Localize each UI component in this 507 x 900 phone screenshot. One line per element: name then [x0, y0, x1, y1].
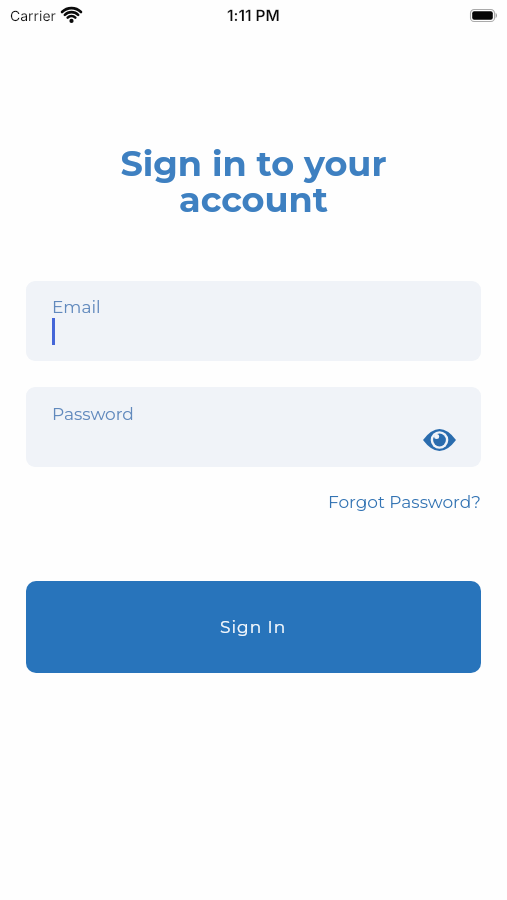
button[interactable]: Email	[26, 281, 481, 361]
button[interactable]: Password	[26, 387, 481, 467]
button[interactable]: Sign In	[26, 581, 481, 673]
staticText: 1:11 PM	[227, 6, 280, 25]
staticText: Sign in to your account	[0, 142, 507, 220]
staticText: Password	[52, 404, 134, 425]
staticText: Carrier	[10, 7, 56, 24]
staticText: Sign In	[220, 617, 287, 638]
button[interactable]	[423, 429, 456, 451]
staticText: Email	[52, 297, 101, 318]
button[interactable]: Forgot Password?	[328, 492, 481, 513]
